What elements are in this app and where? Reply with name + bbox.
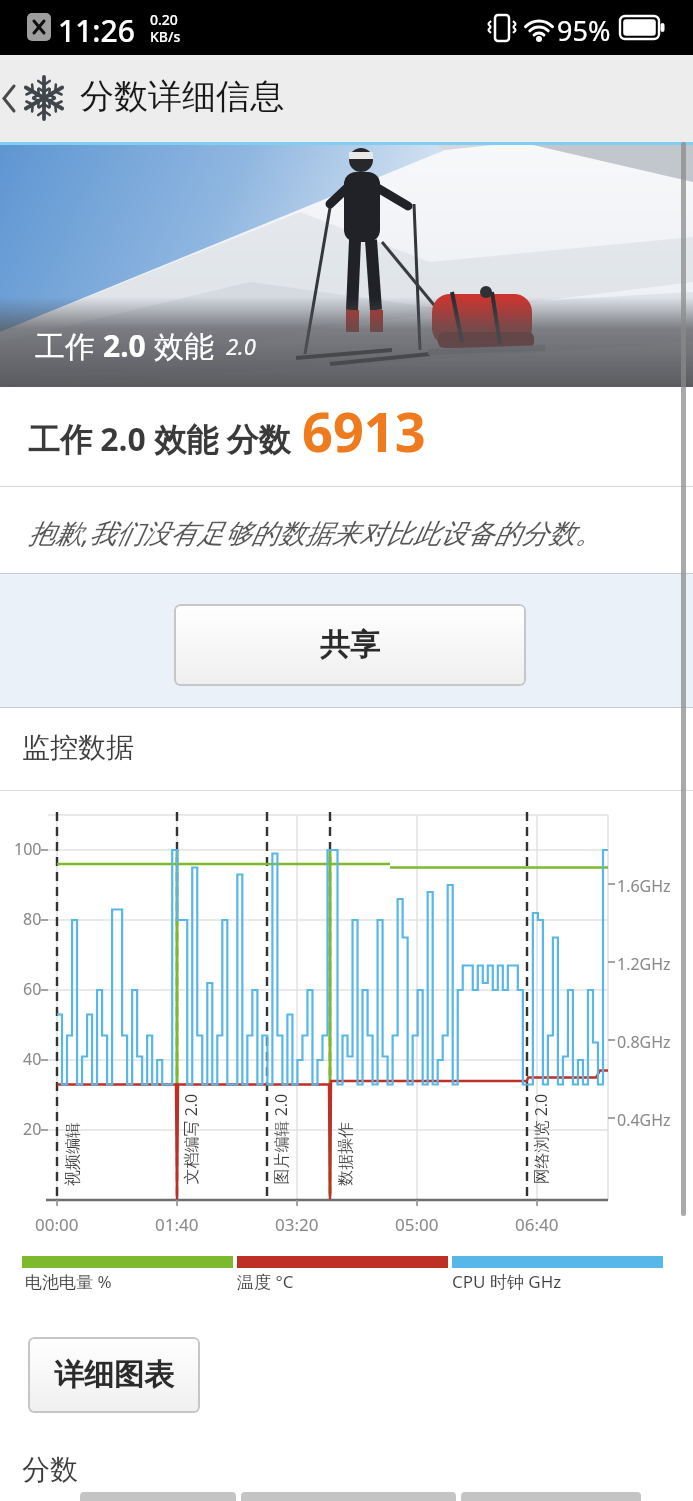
- staticText: 05:00: [395, 1213, 439, 1236]
- staticText: 数据操作: [336, 1122, 356, 1186]
- staticText: 100: [14, 838, 42, 860]
- staticText: 网络浏览 2.0: [529, 1093, 551, 1184]
- staticText: CPU 时钟 GHz: [452, 1270, 562, 1293]
- staticText: 00:00: [35, 1213, 79, 1236]
- staticText: 监控数据: [22, 730, 134, 765]
- button[interactable]: 详细图表: [28, 1337, 200, 1413]
- staticText: 文档编写 2.0: [179, 1093, 201, 1184]
- staticText: 电池电量 %: [25, 1270, 112, 1293]
- staticText: 60: [23, 978, 42, 1000]
- staticText: 1.2GHz: [617, 953, 671, 975]
- staticText: 40: [23, 1048, 42, 1070]
- staticText: 95%: [557, 12, 611, 49]
- staticText: 分数详细信息: [80, 75, 284, 118]
- staticText: 工作 2.0 效能 分数: [28, 417, 291, 461]
- staticText: 抱歉,我们没有足够的数据来对比此设备的分数。: [28, 514, 602, 551]
- staticText: 效能: [154, 328, 214, 366]
- staticText: 0.4GHz: [617, 1109, 671, 1131]
- staticText: 共享: [320, 626, 380, 664]
- button[interactable]: [0, 55, 26, 142]
- staticText: 20: [23, 1118, 42, 1140]
- staticText: 2.0: [103, 325, 154, 366]
- staticText: 11:26: [58, 10, 135, 51]
- staticText: 分数: [22, 1452, 78, 1487]
- staticText: 详细图表: [54, 1356, 174, 1394]
- staticText: 0.8GHz: [617, 1031, 671, 1053]
- staticText: 1.6GHz: [617, 875, 671, 897]
- staticText: KB/s: [150, 27, 181, 46]
- staticText: 视频编辑: [63, 1122, 83, 1186]
- staticText: 03:20: [275, 1213, 319, 1236]
- staticText: 图片编辑 2.0: [269, 1093, 291, 1184]
- staticText: 温度 °C: [237, 1270, 294, 1293]
- staticText: 0.20: [150, 10, 178, 29]
- button[interactable]: 共享: [174, 604, 526, 686]
- staticText: 2.0: [226, 331, 256, 361]
- staticText: 6913: [302, 394, 426, 468]
- staticText: 01:40: [155, 1213, 199, 1236]
- staticText: 06:40: [515, 1213, 559, 1236]
- staticText: 工作: [35, 325, 103, 366]
- staticText: 80: [23, 908, 42, 930]
